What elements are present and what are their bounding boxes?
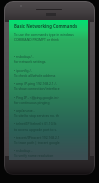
staticText: • nslookup/ - bbox=[14, 54, 34, 58]
staticText: for network settings. bbox=[14, 59, 47, 63]
staticText: • Ping IP - <@ping.google.in> bbox=[14, 95, 59, 99]
staticText: for continuous pinging bbox=[14, 100, 50, 104]
staticText: Basic Networking Commands bbox=[14, 23, 78, 29]
staticText: • telnet/IP (telnet) t 01.10.5t bbox=[14, 121, 57, 125]
staticText: • tracert/IPtracert 192.168.2.1 bbox=[14, 135, 60, 139]
staticText: • amp /P-ping 192.168.2.1 /- bbox=[14, 81, 57, 85]
staticText: To use the commands type in windows bbox=[14, 32, 74, 36]
staticText: To show connection/interface bbox=[14, 86, 60, 90]
staticText: To verify name resolution bbox=[14, 153, 54, 157]
staticText: to access upgrade port to s. bbox=[14, 127, 57, 131]
staticText: To trace path | tracert google bbox=[14, 140, 60, 144]
staticText: COMMAND PROMPT or think bbox=[14, 37, 59, 41]
staticText: • arp/an.exe - bbox=[14, 108, 35, 112]
staticText: • ipconfig /- bbox=[14, 68, 32, 72]
staticText: To check all/whole address bbox=[14, 73, 56, 77]
staticText: To site/to stop services no. th bbox=[14, 113, 60, 117]
staticText: • nslookup - bbox=[14, 148, 33, 152]
